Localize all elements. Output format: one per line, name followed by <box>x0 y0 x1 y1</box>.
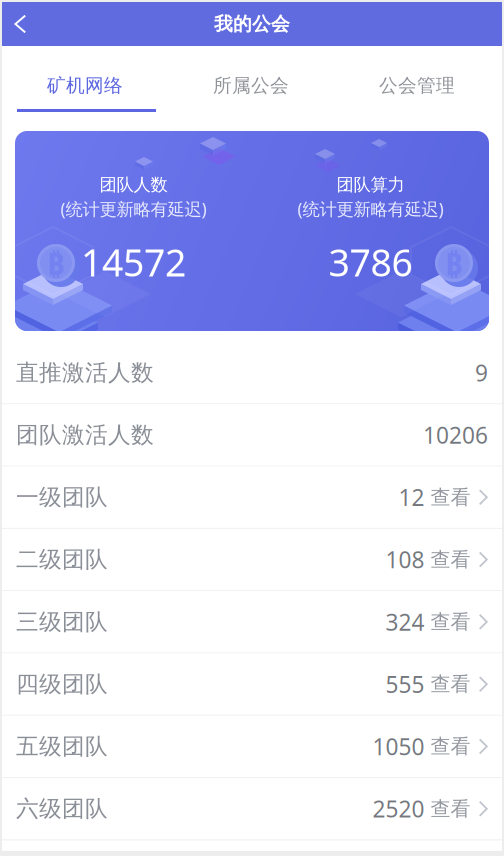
staticText: 12 <box>398 482 424 512</box>
button[interactable]: 四级团队 <box>2 653 502 716</box>
staticText: 查看 <box>424 610 470 634</box>
staticText: 3786 <box>328 237 412 287</box>
button[interactable]: 一级团队 <box>2 467 502 529</box>
staticText: 9 <box>475 358 488 388</box>
staticText: 324 <box>385 607 424 637</box>
button[interactable]: 团队激活人数 <box>2 404 502 467</box>
staticText: 查看 <box>424 547 470 572</box>
staticText: 团队算力 <box>336 174 404 195</box>
staticText: 10206 <box>423 420 488 450</box>
staticText: 我的公会 <box>214 12 290 35</box>
staticText: 团队激活人数 <box>16 421 154 449</box>
staticText: 所属公会 <box>213 74 289 97</box>
staticText: 四级团队 <box>16 670 108 698</box>
button[interactable]: 二级团队 <box>2 529 502 591</box>
staticText: 1050 <box>372 731 424 761</box>
staticText: 公会管理 <box>379 74 455 97</box>
staticText: 查看 <box>424 796 470 821</box>
button[interactable]: 五级团队 <box>2 716 502 778</box>
button[interactable]: 三级团队 <box>2 591 502 653</box>
staticText: 2520 <box>372 794 424 824</box>
staticText: 555 <box>385 669 424 699</box>
staticText: (统计更新略有延迟) <box>297 197 443 220</box>
staticText: 一级团队 <box>16 483 108 511</box>
staticText: 六级团队 <box>16 795 108 823</box>
button[interactable]: 所属公会 <box>168 46 334 125</box>
button[interactable]: 六级团队 <box>2 778 502 840</box>
staticText: 三级团队 <box>16 608 108 636</box>
staticText: 矿机网络 <box>47 74 123 97</box>
staticText: 查看 <box>424 485 470 510</box>
staticText: 二级团队 <box>16 546 108 573</box>
staticText: ₿ <box>47 243 65 283</box>
button[interactable]: 直推激活人数 <box>2 342 502 404</box>
button[interactable]: 矿机网络 <box>2 46 168 125</box>
staticText: 查看 <box>424 734 470 759</box>
staticText: 108 <box>385 544 424 575</box>
staticText: 查看 <box>424 672 470 696</box>
staticText: ₿ <box>445 243 463 283</box>
staticText: 直推激活人数 <box>16 359 154 386</box>
staticText: 14572 <box>81 237 186 287</box>
staticText: 团队人数 <box>99 174 167 195</box>
staticText: 五级团队 <box>16 732 108 760</box>
button[interactable]: Back <box>2 2 54 46</box>
staticText: (统计更新略有延迟) <box>60 197 206 220</box>
button[interactable]: 公会管理 <box>334 46 500 125</box>
